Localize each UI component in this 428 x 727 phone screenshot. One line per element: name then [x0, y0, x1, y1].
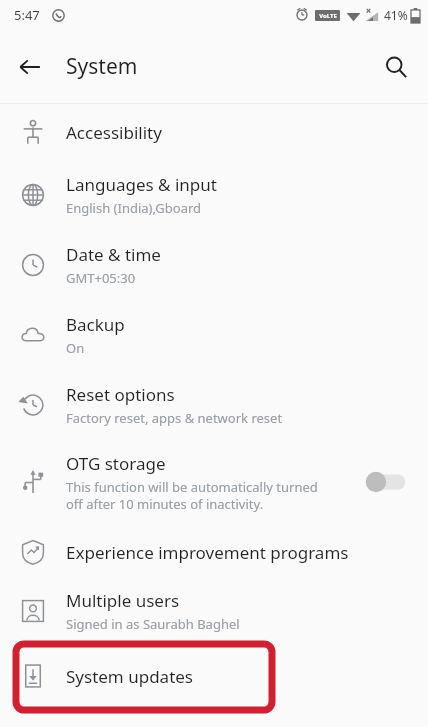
button[interactable]: Backup [0, 300, 428, 370]
staticText: 5:47 [14, 6, 40, 24]
staticText: Reset options [66, 383, 175, 406]
button[interactable]: Reset options [0, 370, 428, 440]
staticText: Languages & input [66, 173, 217, 196]
staticText: English (India),Gboard [66, 199, 202, 217]
button[interactable]: Date & time [0, 230, 428, 300]
staticText: Date & time [66, 243, 161, 266]
staticText: VoLTE [319, 12, 337, 20]
staticText: Accessibility [66, 121, 162, 144]
staticText: Experience improvement programs [66, 541, 349, 564]
staticText: Signed in as Saurabh Baghel [66, 615, 240, 633]
button[interactable]: Search [372, 43, 420, 91]
staticText: OTG storage [66, 452, 166, 475]
button[interactable]: Multiple users [0, 580, 428, 642]
button[interactable]: Experience improvement programs [0, 524, 428, 580]
staticText: Backup [66, 313, 125, 336]
button[interactable]: Accessibility [0, 104, 428, 160]
staticText: Factory reset, apps & network reset [66, 409, 283, 427]
staticText: System updates [66, 665, 194, 688]
button[interactable]: OTG storage [0, 440, 428, 524]
button[interactable]: Languages & input [0, 160, 428, 230]
staticText: Multiple users [66, 589, 180, 612]
staticText: System [66, 52, 138, 81]
button[interactable]: OTG storage toggle [364, 465, 410, 499]
staticText: GMT+05:30 [66, 269, 136, 287]
button[interactable]: Back [6, 43, 54, 91]
staticText: 41% [384, 7, 408, 23]
button[interactable]: System updates [0, 642, 428, 710]
staticText: On [66, 339, 85, 357]
staticText: This function will be automatically turn… [66, 478, 318, 513]
